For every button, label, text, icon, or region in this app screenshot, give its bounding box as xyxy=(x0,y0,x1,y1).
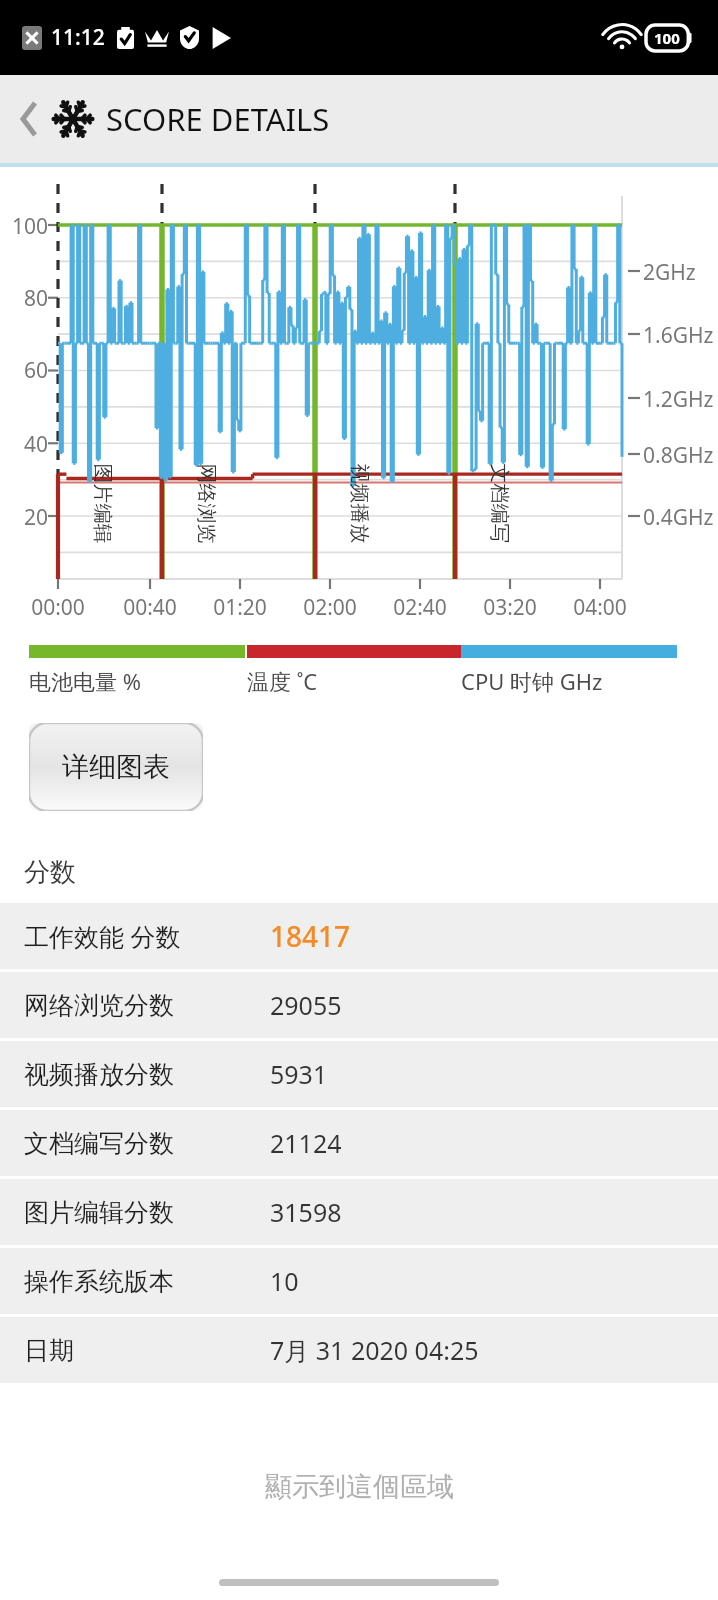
staticText: 01:20 xyxy=(203,593,277,622)
staticText: 详细图表 xyxy=(62,750,170,784)
staticText: 00:40 xyxy=(113,593,187,622)
staticText: CPU 时钟 GHz xyxy=(461,666,603,696)
staticText: 02:00 xyxy=(293,593,367,622)
staticText: 文档编写分数 xyxy=(24,1128,270,1159)
staticText: 0.4GHz xyxy=(643,503,714,532)
staticText: 03:20 xyxy=(473,593,547,622)
button[interactable]: Back xyxy=(8,97,52,141)
staticText: 60 xyxy=(8,356,48,385)
staticText: 29055 xyxy=(270,988,342,1022)
button[interactable]: 图片编辑分数 xyxy=(0,1179,718,1245)
button[interactable]: 文档编写分数 xyxy=(0,1110,718,1176)
staticText: 操作系统版本 xyxy=(24,1266,270,1297)
staticText: 分数 xyxy=(24,856,76,889)
staticText: 图片编辑 xyxy=(89,463,114,543)
staticText: 温度 ˚C xyxy=(247,666,318,696)
staticText: 00:00 xyxy=(21,593,95,622)
staticText: 0.8GHz xyxy=(643,441,714,470)
button[interactable]: 工作效能 分数 xyxy=(0,903,718,969)
staticText: 工作效能 分数 xyxy=(24,919,270,953)
staticText: 视频播放 xyxy=(346,463,371,543)
button[interactable]: 网络浏览分数 xyxy=(0,972,718,1038)
staticText: 7月 31 2020 04:25 xyxy=(270,1333,479,1367)
staticText: 31598 xyxy=(270,1195,342,1229)
staticText: 1.6GHz xyxy=(643,321,714,350)
button[interactable]: 视频播放分数 xyxy=(0,1041,718,1107)
staticText: 网络浏览 xyxy=(193,463,218,543)
button[interactable]: 日期 xyxy=(0,1317,718,1383)
staticText: 顯示到這個區域 xyxy=(265,1470,454,1504)
staticText: 18417 xyxy=(270,917,351,955)
button[interactable]: 详细图表 xyxy=(29,723,203,811)
button[interactable]: 操作系统版本 xyxy=(0,1248,718,1314)
staticText: 视频播放分数 xyxy=(24,1059,270,1090)
staticText: 40 xyxy=(8,430,48,459)
staticText: 20 xyxy=(8,503,48,532)
staticText: SCORE DETAILS xyxy=(106,98,330,140)
staticText: 文档编写 xyxy=(486,463,511,543)
staticText: 21124 xyxy=(270,1126,342,1160)
staticText: 11:12 xyxy=(51,23,105,52)
staticText: 电池电量 % xyxy=(29,666,142,696)
staticText: 网络浏览分数 xyxy=(24,990,270,1021)
staticText: 5931 xyxy=(270,1057,328,1091)
staticText: 100 xyxy=(8,212,48,241)
staticText: 图片编辑分数 xyxy=(24,1197,270,1228)
staticText: 04:00 xyxy=(563,593,637,622)
staticText: 02:40 xyxy=(383,593,457,622)
staticText: 100 xyxy=(654,28,680,48)
staticText: 2GHz xyxy=(643,258,696,287)
staticText: 1.2GHz xyxy=(643,385,714,414)
staticText: 10 xyxy=(270,1264,299,1298)
staticText: 80 xyxy=(8,284,48,313)
staticText: 日期 xyxy=(24,1335,270,1366)
